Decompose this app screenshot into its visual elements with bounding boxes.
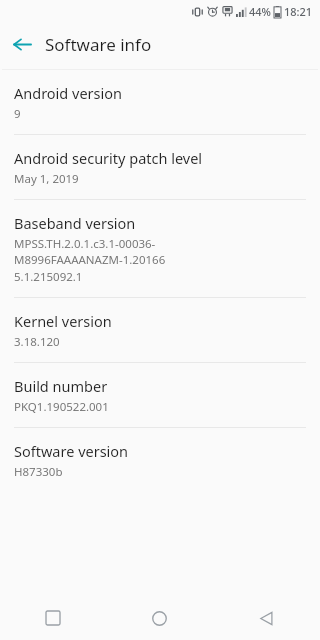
staticText: Baseband version [14, 213, 136, 233]
staticText: MPSS.TH.2.0.1.c3.1-00036-M8996FAAAANAZM-… [14, 236, 306, 268]
button[interactable]: Baseband version [0, 200, 320, 297]
button[interactable]: Android version [0, 70, 320, 134]
staticText: 5.1.215092.1 [14, 269, 83, 285]
staticText: 44% [249, 4, 271, 19]
staticText: PKQ1.190522.001 [14, 399, 109, 415]
staticText: Android version [14, 83, 122, 103]
staticText: Software info [45, 33, 152, 56]
button[interactable]: Recent apps [0, 596, 106, 640]
staticText: Kernel version [14, 311, 112, 331]
staticText: Android security patch level [14, 148, 203, 168]
staticText: 9 [14, 106, 21, 122]
button[interactable]: Android security patch level [0, 135, 320, 199]
staticText: H87330b [14, 464, 63, 480]
staticText: 18:21 [284, 4, 313, 19]
staticText: May 1, 2019 [14, 171, 79, 187]
button[interactable]: Software version [0, 428, 320, 492]
button[interactable]: Kernel version [0, 298, 320, 362]
staticText: Build number [14, 376, 108, 396]
staticText: 3.18.120 [14, 334, 60, 350]
button[interactable]: Home [106, 596, 213, 640]
button[interactable]: Back [0, 22, 44, 66]
button[interactable]: Back [213, 596, 320, 640]
staticText: Software version [14, 441, 129, 461]
button[interactable]: Build number [0, 363, 320, 427]
